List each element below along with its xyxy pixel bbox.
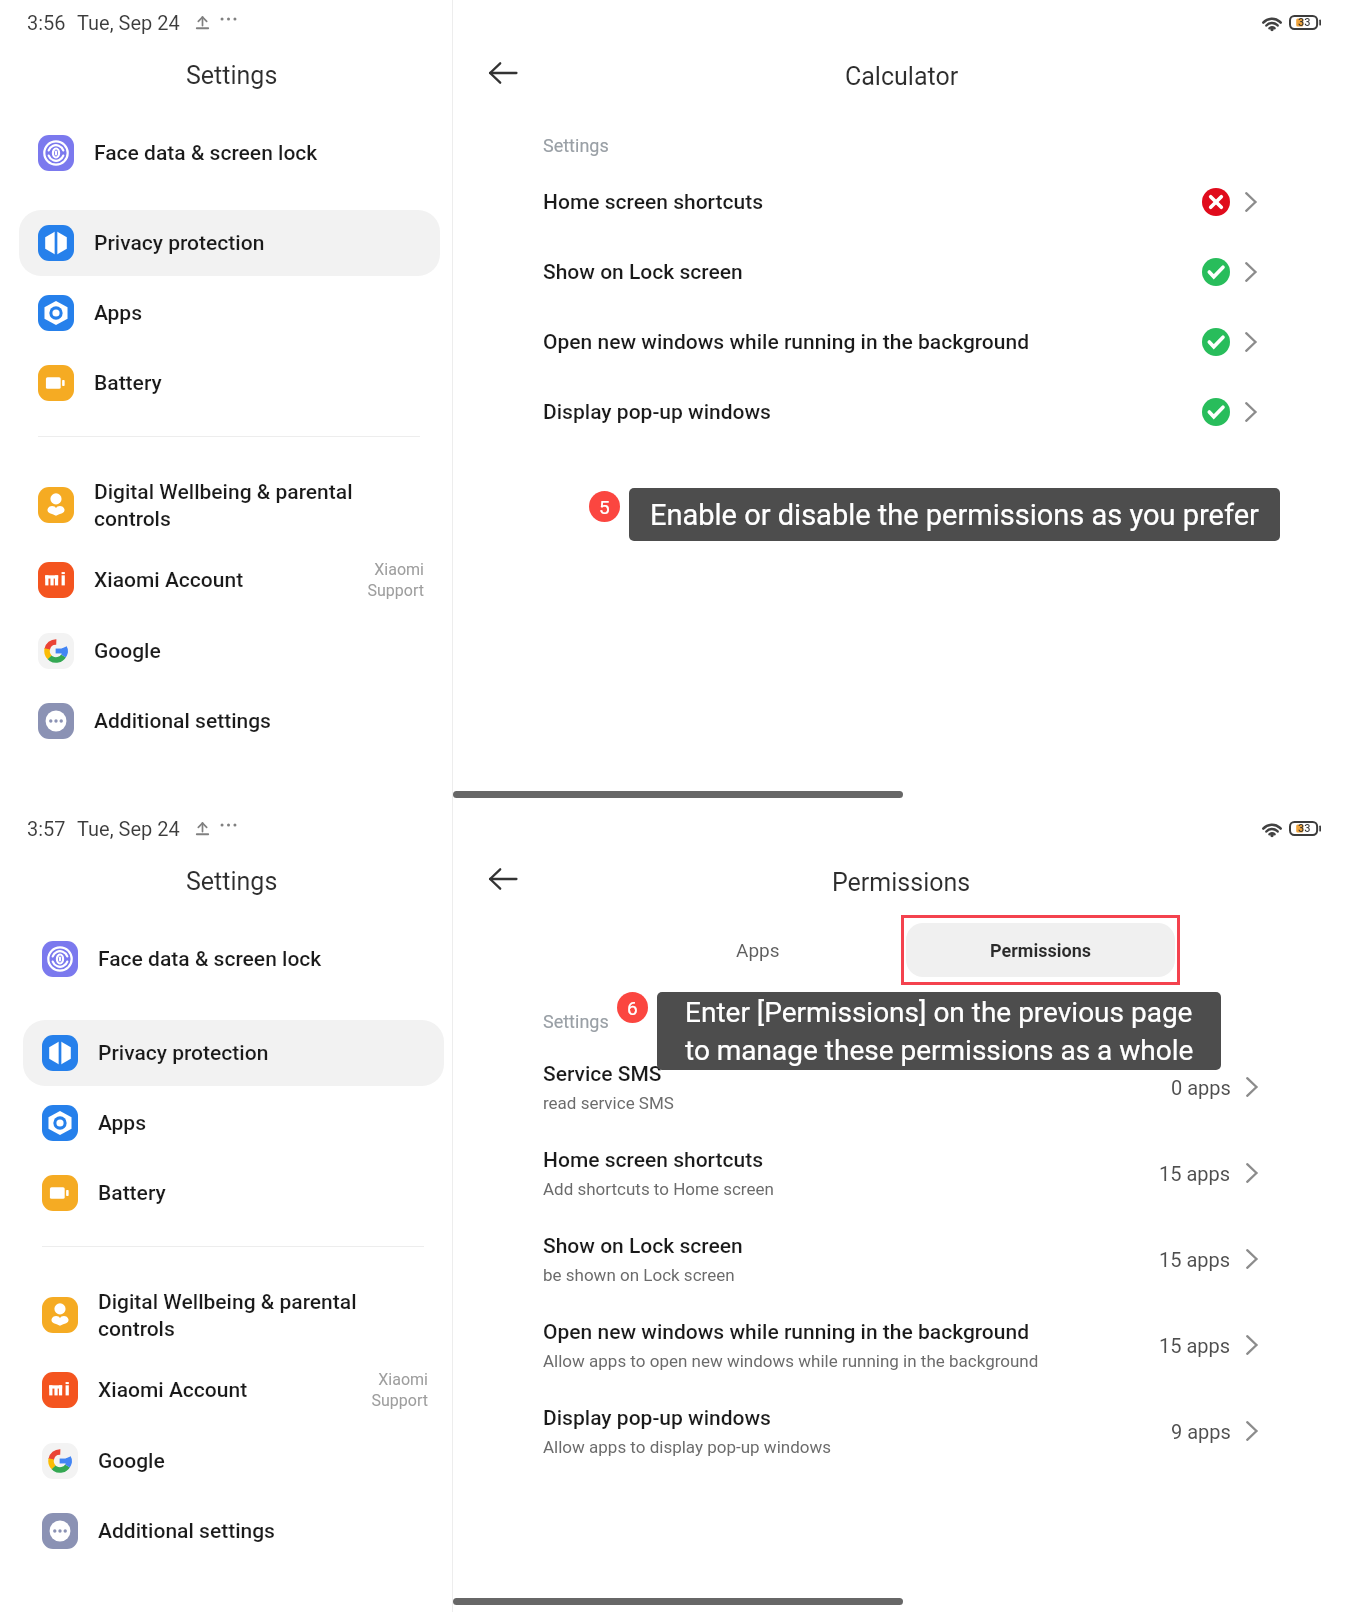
button[interactable]: Face data & screen lock bbox=[23, 926, 444, 992]
staticText: Display pop-up windows bbox=[543, 400, 1202, 425]
staticText: Digital Wellbeing & parental controls bbox=[94, 480, 424, 531]
staticText: read service SMS bbox=[543, 1093, 674, 1113]
staticText: Xiaomi Account bbox=[94, 568, 367, 593]
staticText: Apps bbox=[736, 939, 780, 961]
staticText: Tue, Sep 24 bbox=[77, 817, 180, 840]
staticText: Calculator bbox=[845, 62, 959, 91]
staticText: Display pop-up windows bbox=[543, 1406, 771, 1431]
staticText: Privacy protection bbox=[94, 231, 424, 256]
button[interactable]: Show on Lock screen bbox=[453, 237, 1350, 307]
staticText: Xiaomi Account bbox=[98, 1378, 371, 1403]
staticText: 15 apps bbox=[1159, 1162, 1231, 1185]
button[interactable]: Privacy protection bbox=[19, 210, 440, 276]
staticText: 33 bbox=[1298, 16, 1311, 29]
staticText: 3:57 bbox=[27, 817, 66, 840]
staticText: Battery bbox=[98, 1181, 428, 1206]
button[interactable]: Back bbox=[475, 851, 531, 907]
button[interactable]: Open new windows while running in the ba… bbox=[453, 307, 1350, 377]
button[interactable]: Display pop-up windows bbox=[453, 1388, 1350, 1474]
staticText: Digital Wellbeing & parental controls bbox=[98, 1290, 428, 1341]
staticText: Google bbox=[98, 1449, 428, 1474]
staticText: 33 bbox=[1298, 822, 1311, 835]
staticText: Apps bbox=[98, 1111, 428, 1136]
button[interactable]: Xiaomi Account bbox=[19, 547, 440, 613]
button[interactable]: Apps bbox=[23, 1090, 444, 1156]
button[interactable]: Apps bbox=[703, 923, 813, 977]
button[interactable]: Digital Wellbeing & parental controls bbox=[19, 468, 440, 542]
button[interactable]: Home screen shortcuts bbox=[453, 167, 1350, 237]
staticText: Service SMS bbox=[543, 1062, 662, 1087]
button[interactable]: Privacy protection bbox=[23, 1020, 444, 1086]
button[interactable]: Face data & screen lock bbox=[19, 120, 440, 186]
button[interactable]: Show on Lock screen bbox=[453, 1216, 1350, 1302]
button[interactable]: Additional settings bbox=[23, 1498, 444, 1564]
staticText: Show on Lock screen bbox=[543, 260, 1202, 285]
staticText: 15 apps bbox=[1159, 1248, 1231, 1271]
staticText: Additional settings bbox=[94, 709, 424, 734]
button[interactable]: Home screen shortcuts bbox=[453, 1130, 1350, 1216]
staticText: 9 apps bbox=[1171, 1420, 1231, 1443]
staticText: Enable or disable the permissions as you… bbox=[650, 498, 1259, 532]
button[interactable]: Google bbox=[19, 618, 440, 684]
staticText: Permissions bbox=[832, 868, 971, 897]
button[interactable]: Battery bbox=[19, 350, 440, 416]
staticText: Xiaomi Support bbox=[371, 1370, 428, 1410]
staticText: Settings bbox=[543, 1011, 609, 1032]
staticText: Permissions bbox=[990, 940, 1091, 961]
staticText: be shown on Lock screen bbox=[543, 1265, 735, 1285]
staticText: 6 bbox=[627, 997, 638, 1019]
staticText: Additional settings bbox=[98, 1519, 428, 1544]
staticText: Face data & screen lock bbox=[94, 141, 424, 166]
staticText: Home screen shortcuts bbox=[543, 190, 1202, 215]
button[interactable]: Open new windows while running in the ba… bbox=[453, 1302, 1350, 1388]
staticText: Allow apps to display pop-up windows bbox=[543, 1437, 831, 1457]
staticText: Google bbox=[94, 639, 424, 664]
staticText: Settings bbox=[186, 867, 278, 896]
button[interactable]: Additional settings bbox=[19, 688, 440, 754]
staticText: 3:56 bbox=[27, 11, 66, 34]
staticText: Add shortcuts to Home screen bbox=[543, 1179, 774, 1199]
staticText: Show on Lock screen bbox=[543, 1234, 743, 1259]
button[interactable]: Battery bbox=[23, 1160, 444, 1226]
button[interactable]: Back bbox=[475, 45, 531, 101]
button[interactable]: Service SMS bbox=[453, 1044, 1350, 1130]
staticText: Apps bbox=[94, 301, 424, 326]
staticText: Xiaomi Support bbox=[367, 560, 424, 600]
staticText: 15 apps bbox=[1159, 1334, 1231, 1357]
staticText: Tue, Sep 24 bbox=[77, 11, 180, 34]
button[interactable]: Xiaomi Account bbox=[23, 1357, 444, 1423]
staticText: Face data & screen lock bbox=[98, 947, 428, 972]
staticText: Privacy protection bbox=[98, 1041, 428, 1066]
button[interactable]: Apps bbox=[19, 280, 440, 346]
button[interactable]: Digital Wellbeing & parental controls bbox=[23, 1278, 444, 1352]
staticText: Enter [Permissions] on the previous page… bbox=[685, 996, 1194, 1067]
staticText: Home screen shortcuts bbox=[543, 1148, 764, 1173]
button[interactable]: Display pop-up windows bbox=[453, 377, 1350, 447]
staticText: Settings bbox=[186, 61, 278, 90]
staticText: Allow apps to open new windows while run… bbox=[543, 1351, 1039, 1371]
button[interactable]: Permissions bbox=[906, 923, 1175, 977]
button[interactable]: Google bbox=[23, 1428, 444, 1494]
staticText: Open new windows while running in the ba… bbox=[543, 1320, 1030, 1345]
staticText: 5 bbox=[599, 496, 610, 518]
staticText: Open new windows while running in the ba… bbox=[543, 330, 1202, 355]
staticText: Battery bbox=[94, 371, 424, 396]
staticText: 0 apps bbox=[1171, 1076, 1231, 1099]
staticText: Settings bbox=[543, 135, 609, 156]
